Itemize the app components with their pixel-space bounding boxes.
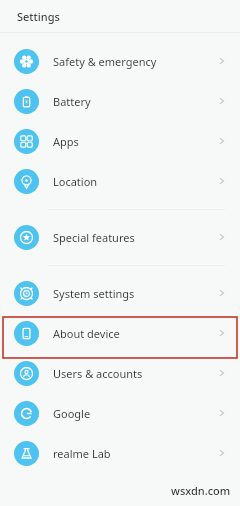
button[interactable]: Battery <box>0 81 240 121</box>
staticText: Apps <box>53 134 217 149</box>
staticText: realme Lab <box>53 446 217 461</box>
button[interactable]: Special features <box>0 217 240 257</box>
staticText: About device <box>53 326 217 341</box>
button[interactable]: About device <box>0 313 240 353</box>
button[interactable]: realme Lab <box>0 433 240 473</box>
staticText: Safety & emergency <box>53 54 217 69</box>
staticText: System settings <box>53 286 217 301</box>
staticText: Special features <box>53 230 217 245</box>
staticText: Users & accounts <box>53 366 217 381</box>
button[interactable]: Apps <box>0 121 240 161</box>
button[interactable]: System settings <box>0 273 240 313</box>
staticText: Google <box>53 406 217 421</box>
staticText: Location <box>53 174 217 189</box>
button[interactable]: Users & accounts <box>0 353 240 393</box>
staticText: Battery <box>53 94 217 109</box>
staticText: Settings <box>17 9 60 24</box>
button[interactable]: Google <box>0 393 240 433</box>
button[interactable]: Location <box>0 161 240 201</box>
button[interactable]: Safety & emergency <box>0 41 240 81</box>
staticText: wsxdn.com <box>171 483 231 498</box>
